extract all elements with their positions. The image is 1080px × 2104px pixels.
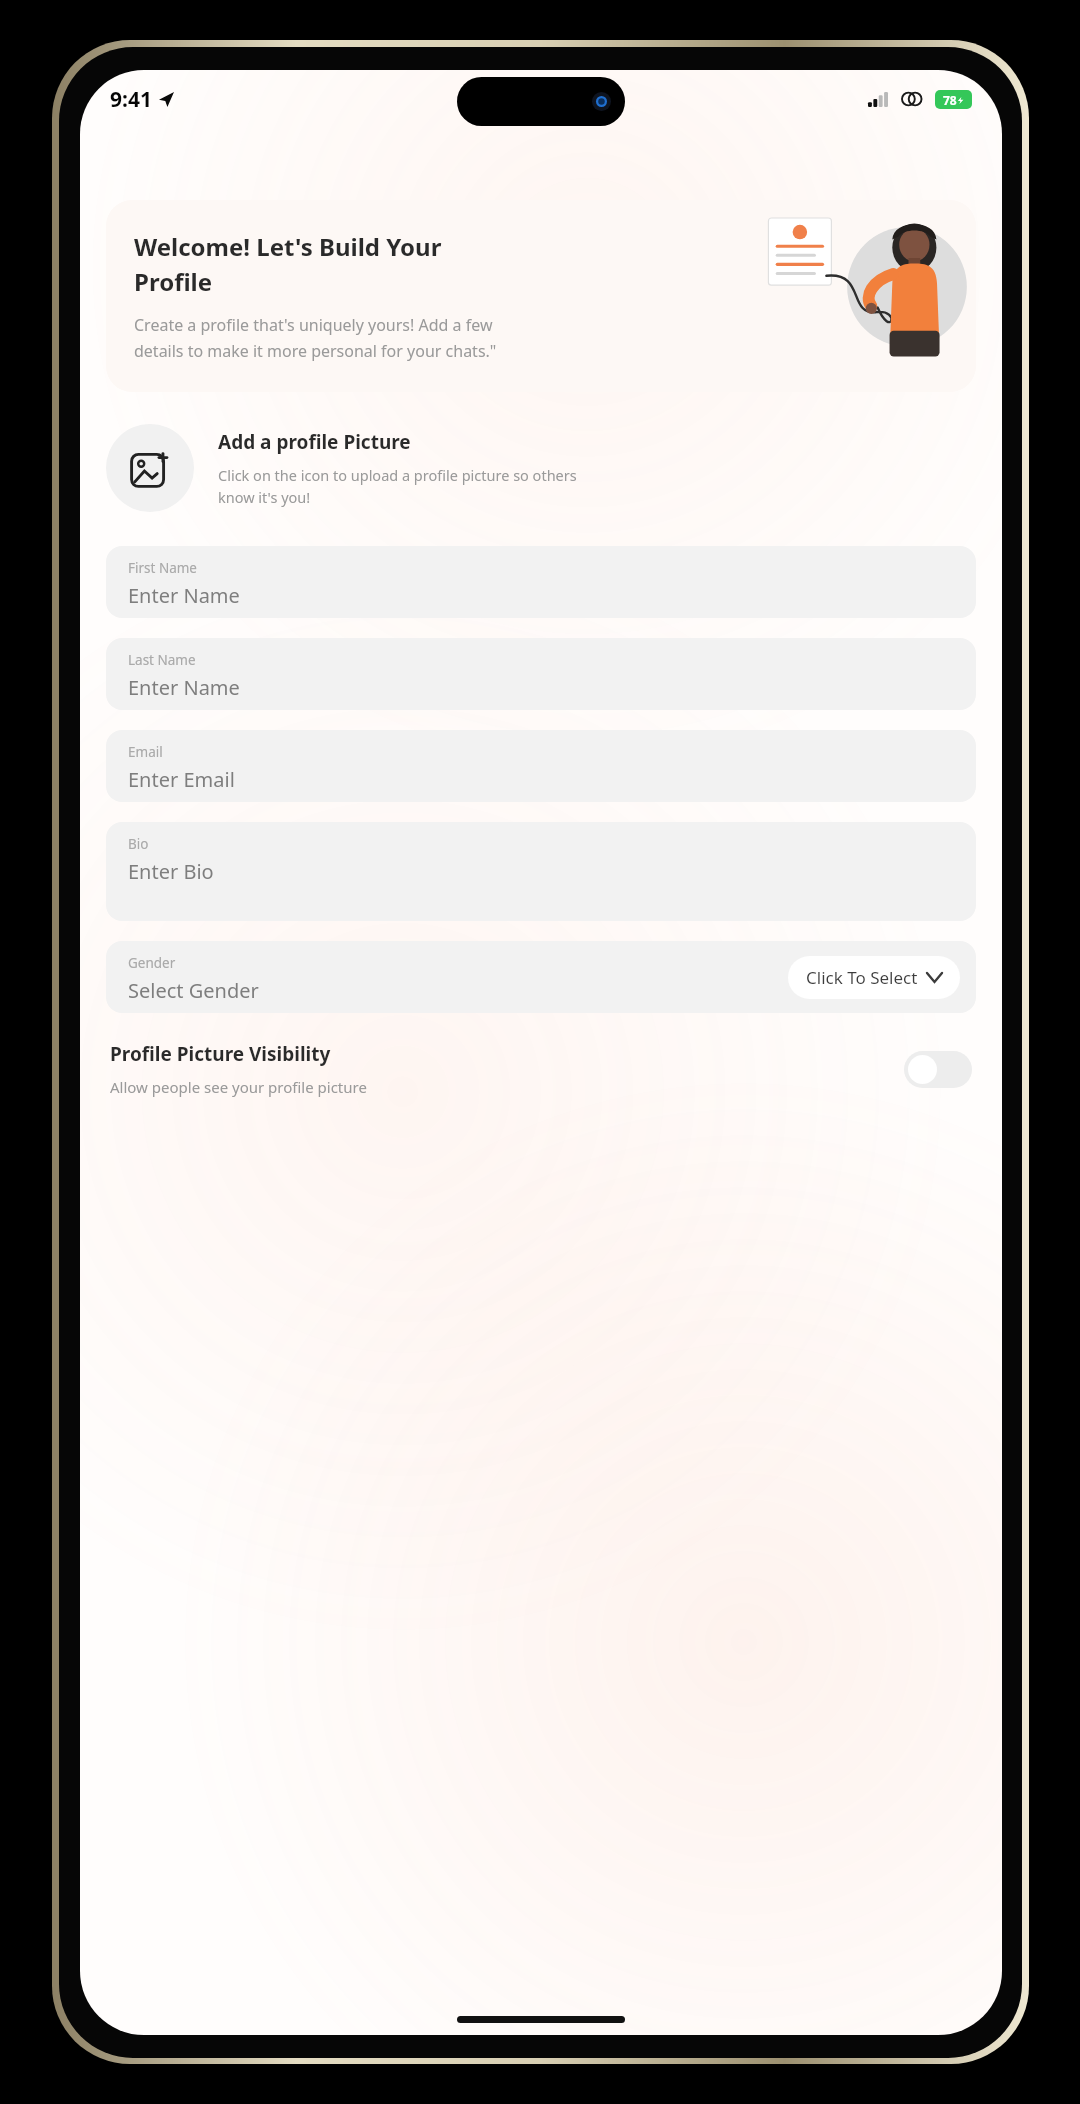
staticText: Welcome! Let's Build Your Profile [134,230,442,298]
staticText: Click on the icon to upload a profile pi… [218,465,577,507]
staticText: Gender [128,954,176,972]
staticText: Click To Select [806,966,918,989]
staticText: First Name [128,559,197,577]
button[interactable]: Email [106,730,976,802]
button[interactable]: Profile Picture Visibility [110,1041,972,1097]
button[interactable]: Add a profile picture [106,424,194,512]
staticText: 78 [943,92,957,108]
staticText: Add a profile Picture [218,429,411,455]
button[interactable]: First Name [106,546,976,618]
staticText: Email [128,743,163,761]
staticText: Select Gender [128,977,259,1004]
button[interactable]: Bio [106,822,976,921]
staticText: Bio [128,835,149,853]
staticText: Enter Email [128,766,235,793]
staticText: 9:41 [110,85,152,114]
button[interactable]: Add a profile picture [106,424,976,512]
staticText: Create a profile that's uniquely yours! … [134,314,497,362]
staticText: Enter Bio [128,858,214,885]
staticText: Enter Name [128,582,240,609]
button[interactable]: Gender [106,941,976,1013]
button[interactable]: Profile picture visibility toggle [904,1051,972,1088]
button[interactable]: Welcome! Let's Build Your Profile [106,200,976,392]
button[interactable]: Click To Select [788,956,960,999]
staticText: Enter Name [128,674,240,701]
button[interactable]: Last Name [106,638,976,710]
staticText: Profile Picture Visibility [110,1041,331,1067]
staticText: Last Name [128,651,196,669]
staticText: Allow people see your profile picture [110,1077,367,1097]
